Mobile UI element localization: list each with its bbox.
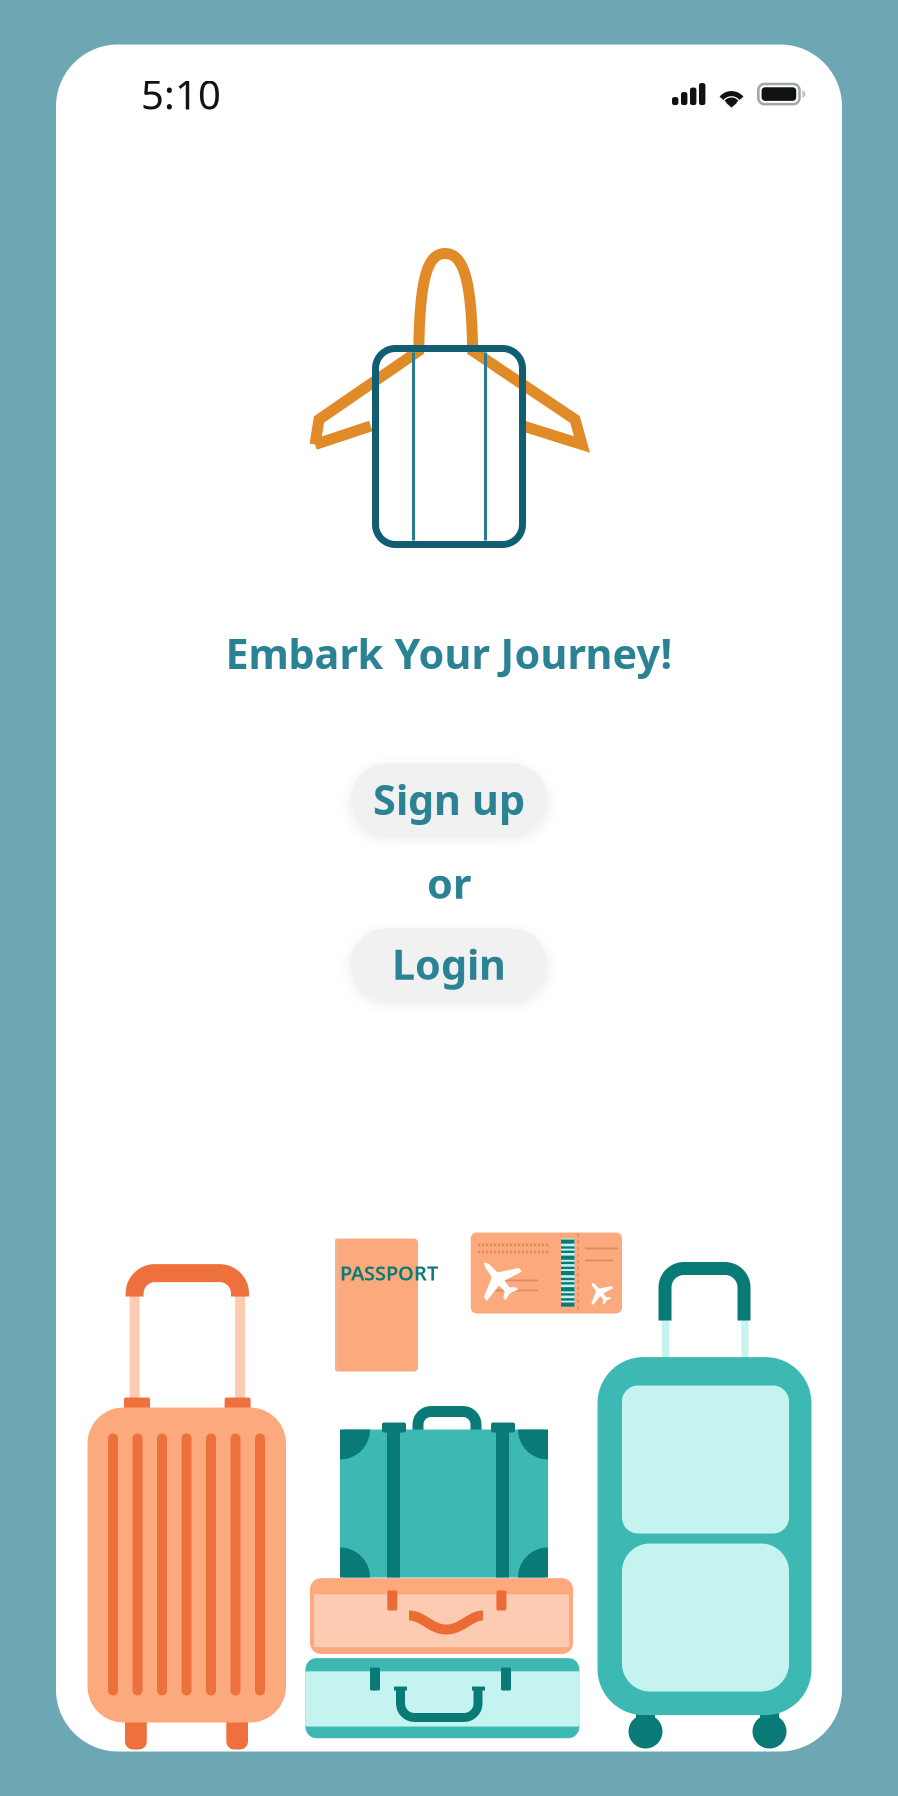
staticText: Embark Your Journey! bbox=[225, 625, 672, 680]
staticText: Sign up bbox=[373, 771, 525, 826]
staticText: PASSPORT bbox=[340, 1259, 438, 1286]
staticText: 5:10 bbox=[141, 67, 221, 121]
button[interactable]: Sign up bbox=[351, 763, 547, 834]
staticText: Login bbox=[392, 936, 506, 991]
button[interactable]: Login bbox=[351, 928, 547, 999]
staticText: or bbox=[427, 855, 471, 910]
